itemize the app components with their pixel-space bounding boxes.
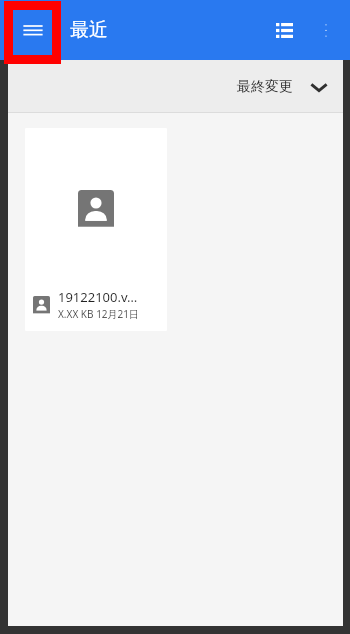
button[interactable]: 19122100.v…	[25, 128, 167, 331]
button[interactable]: More options	[310, 14, 342, 46]
staticText: 最終変更	[237, 78, 293, 96]
button[interactable]: Switch to list view	[266, 12, 302, 48]
staticText: X.XX KB 12月21日	[58, 307, 140, 321]
staticText: 19122100.v…	[58, 288, 138, 306]
staticText: 最近	[70, 18, 108, 42]
button[interactable]: 最終変更	[237, 78, 337, 96]
button[interactable]: Navigation menu	[13, 10, 53, 50]
